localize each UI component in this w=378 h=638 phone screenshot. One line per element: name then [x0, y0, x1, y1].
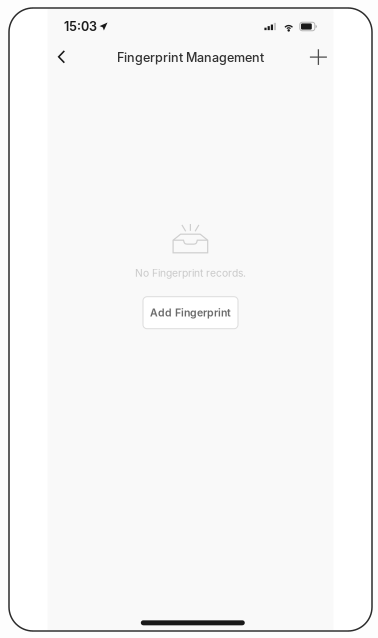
button[interactable]: Back: [47, 44, 75, 70]
staticText: 15:03: [64, 19, 97, 34]
staticText: No Fingerprint records.: [135, 267, 246, 279]
button[interactable]: Add fingerprint: [305, 44, 333, 70]
staticText: Fingerprint Management: [117, 50, 264, 65]
button[interactable]: Add Fingerprint: [143, 297, 238, 329]
staticText: Add Fingerprint: [150, 306, 231, 319]
